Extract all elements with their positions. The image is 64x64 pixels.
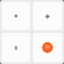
button[interactable]: Settings	[33, 2, 62, 30]
button[interactable]: Add	[2, 2, 30, 30]
button[interactable]: Payments	[2, 33, 30, 62]
button[interactable]: Menu	[33, 33, 62, 62]
